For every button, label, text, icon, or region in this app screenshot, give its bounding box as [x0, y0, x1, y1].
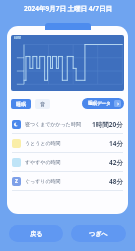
staticText: ぐっすりの時間	[25, 178, 61, 184]
staticText: 音	[40, 101, 45, 107]
staticText: 寝つくまでかかった時間	[25, 121, 81, 127]
staticText: 睡眠データ	[88, 101, 111, 107]
button[interactable]: 音	[35, 99, 50, 109]
button[interactable]: 戻る	[9, 225, 63, 242]
button[interactable]: 睡眠	[11, 99, 31, 109]
button[interactable]: すやすやの時間	[7, 153, 128, 171]
button[interactable]: Z	[7, 172, 128, 190]
button[interactable]: 寝つくまでかかった時間	[7, 115, 128, 133]
staticText: 時間	[14, 36, 21, 40]
staticText: 14分	[109, 139, 123, 148]
staticText: うとうとの時間	[25, 140, 61, 146]
staticText: 睡眠	[16, 101, 26, 107]
other: 詳細	[114, 100, 121, 107]
staticText: 42分	[109, 158, 123, 167]
staticText: つぎへ	[89, 230, 108, 238]
staticText: 1時間20分	[92, 120, 123, 129]
button[interactable]: つぎへ	[71, 225, 126, 242]
button[interactable]: 睡眠データ	[82, 98, 124, 109]
button[interactable]: うとうとの時間	[7, 134, 128, 152]
staticText: 48分	[109, 177, 123, 186]
staticText: 2024年9月7日 土曜日 4/7日目	[24, 4, 112, 13]
staticText: すやすやの時間	[25, 159, 61, 165]
staticText: 戻る	[30, 230, 43, 238]
staticText: Z	[15, 178, 18, 185]
